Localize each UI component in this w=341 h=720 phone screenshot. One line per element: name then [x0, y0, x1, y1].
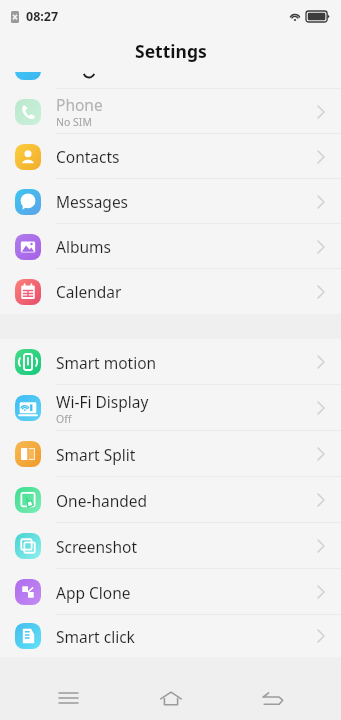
staticText: One-handed	[56, 490, 148, 511]
button[interactable]: Albums	[0, 224, 341, 269]
staticText: Messages	[56, 191, 129, 212]
staticText: Off	[56, 412, 72, 426]
button[interactable]: Back	[249, 676, 297, 720]
button[interactable]: App Clone	[0, 569, 341, 615]
staticText: Smart click	[56, 626, 135, 647]
staticText: Smart motion	[56, 352, 157, 373]
staticText: Contacts	[56, 146, 120, 167]
staticText: Phone	[56, 94, 103, 115]
button[interactable]: Wi-Fi Display	[0, 385, 341, 431]
button[interactable]: Calendar	[0, 269, 341, 314]
button[interactable]: One-handed	[0, 477, 341, 523]
button[interactable]: Smart click	[0, 615, 341, 657]
staticText: 08:27	[26, 8, 59, 25]
button[interactable]: Home	[147, 676, 195, 720]
staticText: Albums	[56, 236, 111, 257]
button[interactable]	[0, 72, 341, 89]
staticText: Screenshot	[56, 536, 138, 557]
button[interactable]: Phone	[0, 89, 341, 134]
staticText: No SIM	[56, 115, 92, 129]
button[interactable]: Recent apps	[44, 676, 92, 720]
button[interactable]: Screenshot	[0, 523, 341, 569]
button[interactable]: Smart motion	[0, 339, 341, 385]
staticText: App Clone	[56, 582, 131, 603]
button[interactable]: Contacts	[0, 134, 341, 179]
button[interactable]: Messages	[0, 179, 341, 224]
staticText: Calendar	[56, 281, 122, 302]
staticText: Wi-Fi Display	[56, 391, 149, 412]
staticText: Smart Split	[56, 444, 136, 465]
button[interactable]: Smart Split	[0, 431, 341, 477]
staticText: Settings	[135, 39, 207, 63]
